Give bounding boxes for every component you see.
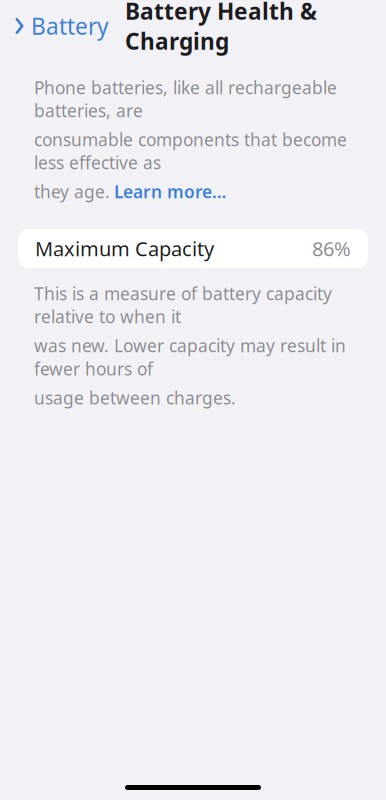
staticText: consumable components that become less e… (34, 128, 347, 174)
staticText: Learn more… (114, 180, 226, 203)
staticText: they age. (34, 180, 110, 203)
staticText: Maximum Capacity (35, 235, 214, 262)
staticText: 86% (312, 235, 351, 262)
button[interactable]: Maximum Capacity (18, 229, 368, 268)
staticText: usage between charges. (34, 386, 236, 409)
staticText: Battery (31, 11, 109, 41)
staticText: was new. Lower capacity may result in fe… (34, 334, 346, 380)
staticText: Battery Health & Charging (125, 0, 317, 56)
staticText: This is a measure of battery capacity re… (34, 282, 332, 328)
staticText: Phone batteries, like all rechargeable b… (34, 76, 337, 122)
button[interactable]: Learn more… (114, 180, 226, 203)
button[interactable]: Battery (0, 5, 117, 47)
